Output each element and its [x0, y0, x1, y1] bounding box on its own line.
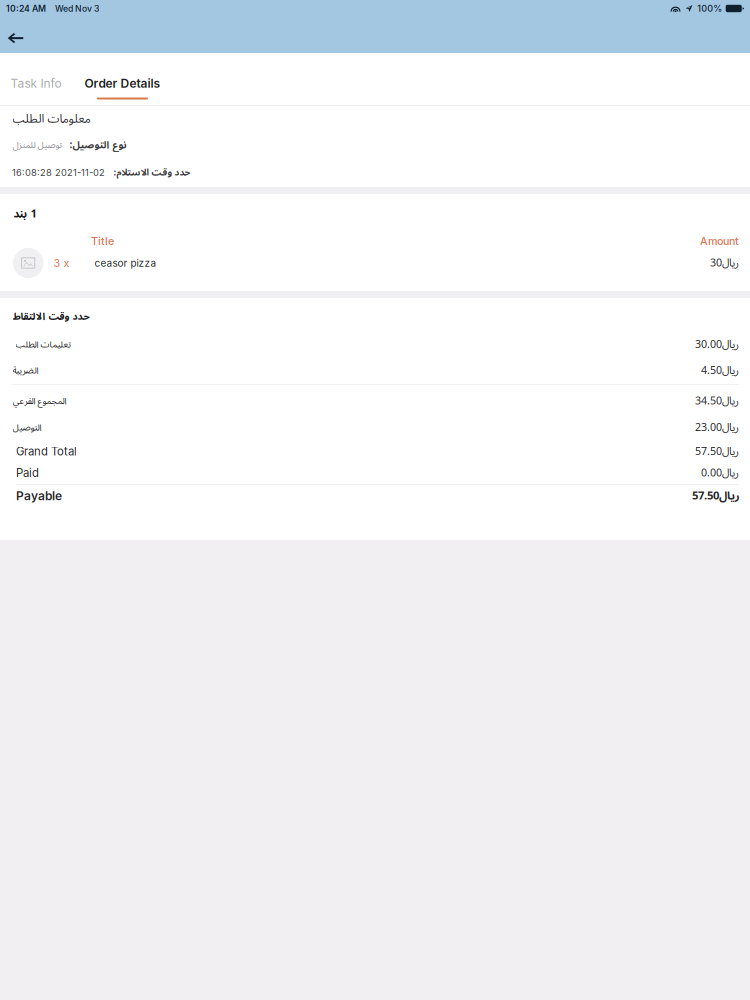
staticText: Wed Nov 3	[55, 3, 99, 14]
staticText: الضريبة	[12, 361, 38, 380]
staticText: تعليمات الطلب	[15, 335, 71, 354]
button[interactable]: Back	[0, 17, 31, 53]
staticText: ‎4.50ريال	[701, 359, 739, 382]
staticText: Grand Total	[16, 445, 77, 458]
staticText: التوصيل	[12, 418, 41, 437]
staticText: Title	[91, 234, 114, 247]
staticText: ‎30ريال	[710, 252, 739, 274]
staticText: Order Details	[84, 76, 160, 90]
staticText: 10:24 AM	[6, 3, 46, 14]
staticText: ‎57.50ريال	[692, 484, 739, 508]
staticText: Payable	[16, 489, 62, 503]
staticText: ceasor pizza	[94, 257, 156, 269]
staticText: Paid	[16, 466, 39, 480]
staticText: نوع التوصيل:	[69, 134, 126, 155]
staticText: 3 x	[53, 256, 69, 269]
staticText: حدد وقت الالتقاط	[12, 306, 89, 327]
staticText: Amount	[700, 234, 739, 247]
staticText: توصيل للمنزل	[12, 135, 62, 154]
staticText: حدد وقت الاستلام:	[113, 163, 190, 182]
staticText: 100%	[697, 3, 722, 14]
staticText: ‎30.00ريال	[695, 333, 739, 356]
staticText: ‎23.00ريال	[695, 416, 739, 439]
staticText: 1 بند	[13, 202, 36, 226]
staticText: المجموع الفرعي	[12, 391, 66, 410]
button[interactable]: Task Info	[0, 53, 72, 105]
staticText: 16:08:28 2021-11-02	[12, 167, 105, 178]
staticText: ‎57.50ريال	[695, 440, 739, 463]
staticText: معلومات الطلب	[12, 106, 90, 132]
staticText: Task Info	[10, 76, 61, 90]
staticText: ‎34.50ريال	[695, 390, 739, 412]
button[interactable]: Order Details	[72, 53, 173, 105]
staticText: ‎0.00ريال	[701, 462, 739, 484]
